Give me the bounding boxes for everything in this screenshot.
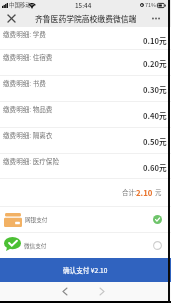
staticText: 元 (155, 188, 162, 197)
button[interactable]: 网银支付 (0, 207, 171, 232)
staticText: 缴费明细: 书费 (3, 78, 46, 88)
staticText: 0.30元 (143, 84, 167, 95)
staticText: 齐鲁医药学院高校缴费微信端 (35, 13, 137, 24)
button[interactable]: 缴费明细: 学费 (0, 27, 171, 50)
button[interactable]: 缴费明细: 隔离衣 (0, 128, 171, 154)
button[interactable]: 确认支付 ¥2.10 (0, 258, 171, 282)
staticText: 0.50元 (143, 136, 167, 147)
staticText: 确认支付 ¥2.10 (63, 265, 108, 275)
button[interactable]: Back (52, 282, 78, 301)
button[interactable]: Close (5, 12, 18, 25)
button[interactable]: 缴费明细: 物品费 (0, 102, 171, 128)
staticText: 网银支付 (25, 216, 48, 224)
staticText: 0.20元 (143, 58, 167, 69)
button[interactable]: More options (149, 12, 162, 25)
staticText: 15:44 (75, 1, 92, 10)
staticText: 0.40元 (143, 110, 167, 121)
staticText: 缴费明细: 物品费 (3, 104, 53, 114)
staticText: 缴费明细: 医疗保险 (3, 156, 60, 166)
staticText: 0.10元 (143, 35, 167, 46)
staticText: 缴费明细: 学费 (3, 29, 46, 39)
button[interactable]: 缴费明细: 住宿费 (0, 50, 171, 76)
staticText: 0.60元 (143, 162, 167, 173)
button[interactable]: Forward (89, 282, 115, 301)
button[interactable]: 微信支付 (0, 233, 171, 258)
staticText: 71% (145, 1, 156, 9)
staticText: 缴费明细: 住宿费 (3, 52, 53, 62)
staticText: 中国移动 (9, 1, 31, 9)
staticText: 微信支付 (24, 242, 47, 250)
button[interactable]: 缴费明细: 书费 (0, 76, 171, 102)
staticText: 2.10 (136, 187, 153, 198)
button[interactable]: 缴费明细: 医疗保险 (0, 154, 171, 179)
staticText: 合计: (122, 188, 137, 197)
staticText: 缴费明细: 隔离衣 (3, 130, 53, 140)
